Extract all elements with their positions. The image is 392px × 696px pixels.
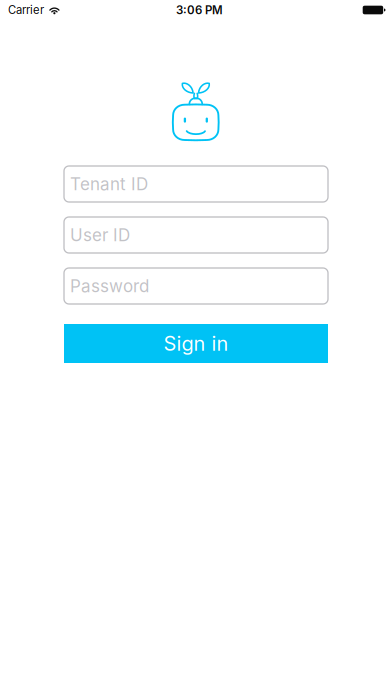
staticText: User ID: [70, 225, 130, 245]
button[interactable]: Sign in: [64, 324, 328, 363]
staticText: Tenant ID: [70, 174, 148, 194]
staticText: Password: [70, 276, 149, 296]
button[interactable]: Tenant ID: [64, 166, 328, 202]
staticText: Sign in: [163, 331, 228, 356]
staticText: Carrier: [8, 3, 44, 17]
button[interactable]: Password: [64, 268, 328, 304]
button[interactable]: User ID: [64, 217, 328, 253]
staticText: 3:06 PM: [176, 3, 223, 17]
